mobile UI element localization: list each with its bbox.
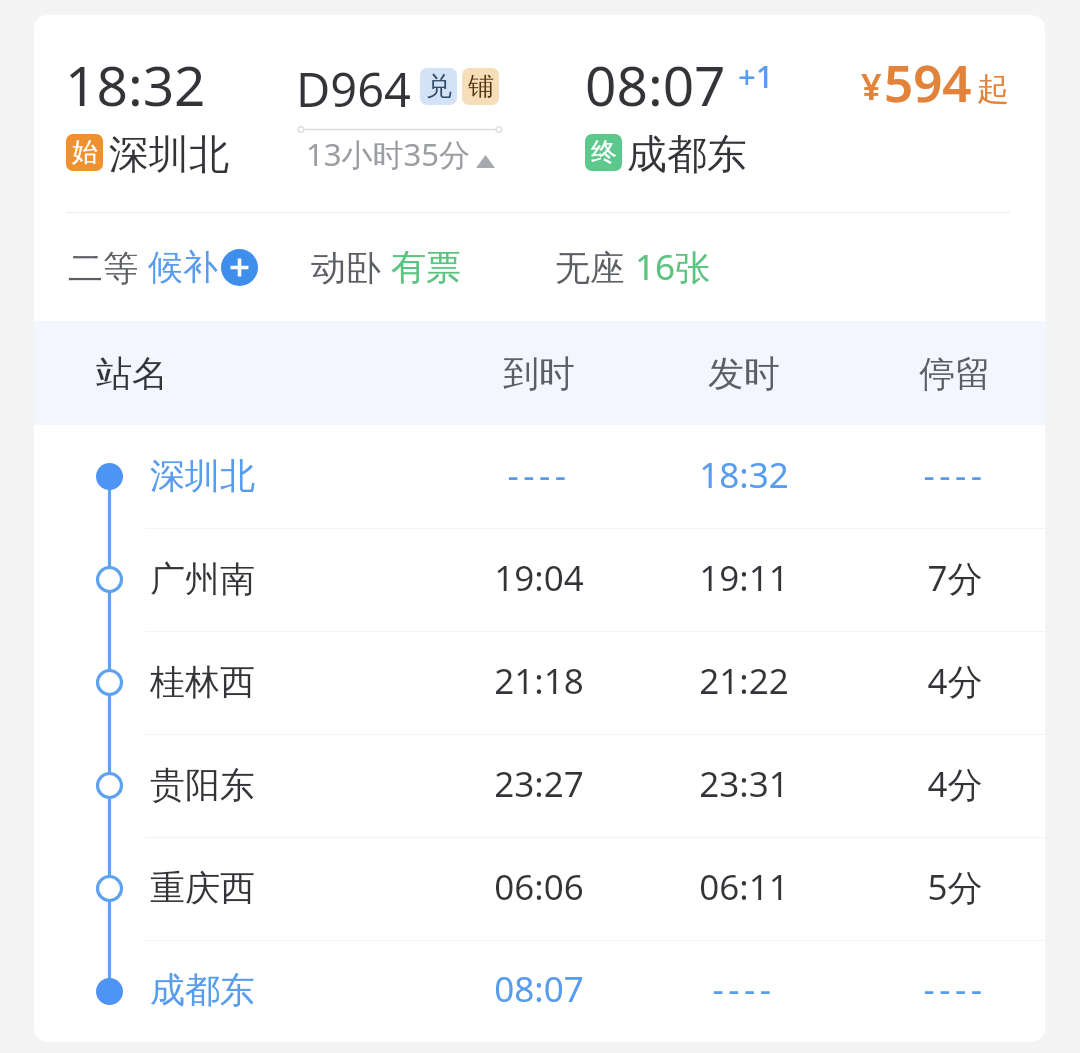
staticText: 成都东 [150, 968, 255, 1012]
staticText: 06:06 [419, 863, 659, 911]
staticText: 23:31 [624, 760, 864, 808]
staticText: 4分 [835, 657, 1045, 705]
staticText: 无座 [555, 243, 635, 291]
staticText: 18:32 [65, 47, 206, 122]
staticText: 起 [977, 69, 1009, 109]
staticText: 06:11 [624, 863, 864, 911]
button[interactable]: 桂林西 [34, 631, 1045, 734]
staticText: 广州南 [150, 557, 255, 601]
staticText: D964 [296, 57, 411, 121]
staticText: +1 [738, 55, 774, 97]
staticText: 16张 [635, 243, 711, 291]
staticText: 终 [591, 136, 617, 169]
staticText: 13小时35分 [306, 133, 470, 175]
staticText: ---- [624, 965, 864, 1013]
button[interactable]: 成都东 [34, 940, 1045, 1042]
staticText: ¥ [861, 62, 882, 111]
staticText: 铺 [468, 70, 494, 103]
staticText: 停留 [835, 351, 1045, 396]
staticText: 21:22 [624, 657, 864, 705]
staticText: 二等 [68, 243, 148, 291]
button[interactable]: 广州南 [34, 528, 1045, 631]
staticText: 18:32 [624, 451, 864, 499]
button[interactable]: 贵阳东 [34, 734, 1045, 837]
staticText: 7分 [835, 554, 1045, 602]
staticText: ---- [835, 965, 1045, 1013]
button[interactable]: 重庆西 [34, 837, 1045, 940]
staticText: 19:04 [419, 554, 659, 602]
staticText: 候补 [148, 245, 218, 289]
staticText: 兑 [426, 70, 452, 103]
staticText: 动卧 [311, 243, 391, 291]
staticText: 重庆西 [150, 866, 255, 910]
staticText: 594 [884, 47, 972, 116]
staticText: 贵阳东 [150, 763, 255, 807]
staticText: 4分 [835, 760, 1045, 808]
staticText: 08:07 [585, 47, 726, 122]
staticText: 深圳北 [109, 129, 229, 179]
staticText: 站名 [96, 351, 168, 396]
button[interactable]: 深圳北 [34, 425, 1045, 528]
staticText: ---- [835, 451, 1045, 499]
staticText: 发时 [624, 351, 864, 396]
staticText: 成都东 [627, 129, 747, 179]
staticText: 桂林西 [150, 660, 255, 704]
staticText: 19:11 [624, 554, 864, 602]
staticText: 08:07 [419, 965, 659, 1013]
staticText: 21:18 [419, 657, 659, 705]
staticText: 始 [72, 136, 98, 169]
staticText: 到时 [419, 351, 659, 396]
staticText: 深圳北 [150, 454, 255, 498]
staticText: 5分 [835, 863, 1045, 911]
staticText: 23:27 [419, 760, 659, 808]
staticText: ---- [419, 451, 659, 499]
staticText: 有票 [391, 245, 461, 289]
button[interactable]: 18:32 [34, 15, 1045, 321]
